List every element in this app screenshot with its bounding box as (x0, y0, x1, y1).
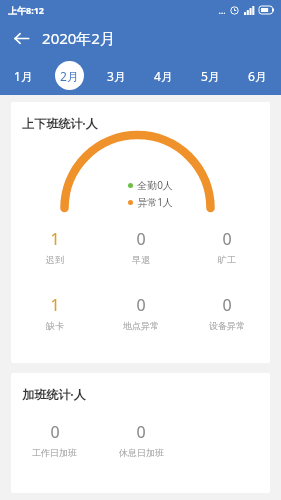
staticText: 加班统计·人 (22, 386, 86, 402)
button[interactable]: 5月 (187, 56, 234, 95)
staticText: 0 (50, 421, 60, 443)
staticText: 2020年2月 (42, 28, 115, 48)
button[interactable]: 3月 (93, 56, 140, 95)
staticText: 0 (136, 421, 146, 443)
staticText: 3月 (107, 68, 126, 84)
staticText: 0 (222, 294, 232, 316)
staticText: 0 (136, 228, 146, 250)
staticText: 设备异常 (209, 320, 245, 331)
button[interactable]: 0 (98, 421, 184, 458)
button[interactable]: 4月 (140, 56, 187, 95)
staticText: 旷工 (218, 254, 236, 265)
staticText: 工作日加班 (32, 447, 77, 458)
staticText: 迟到 (46, 254, 64, 265)
staticText: 异常1人 (137, 195, 173, 209)
button[interactable]: 0 (184, 228, 270, 265)
staticText: 缺卡 (46, 320, 64, 331)
button[interactable]: 1 (11, 228, 98, 265)
button[interactable]: 0 (98, 294, 184, 331)
staticText: … (218, 4, 226, 16)
button[interactable]: 1 (11, 294, 98, 331)
staticText: 1月 (14, 68, 33, 84)
staticText: 地点异常 (123, 320, 159, 331)
staticText: 全勤0人 (137, 178, 173, 192)
button[interactable]: 1月 (0, 56, 46, 95)
button[interactable]: 6月 (234, 56, 281, 95)
staticText: 0 (222, 228, 232, 250)
button[interactable]: 0 (11, 421, 98, 458)
button[interactable]: 2月 (46, 56, 93, 95)
staticText: 早退 (132, 254, 150, 265)
button[interactable]: 0 (184, 294, 270, 331)
button[interactable]: 0 (98, 228, 184, 265)
staticText: 1 (50, 294, 60, 316)
staticText: 休息日加班 (119, 447, 164, 458)
staticText: 上午8:12 (8, 4, 44, 16)
staticText: 上下班统计·人 (22, 115, 98, 131)
staticText: 6月 (248, 68, 267, 84)
button[interactable]: Back (8, 25, 34, 51)
staticText: 1 (50, 228, 60, 250)
staticText: 2月 (60, 68, 79, 84)
staticText: 0 (136, 294, 146, 316)
staticText: 4月 (154, 68, 173, 84)
staticText: 5月 (201, 68, 220, 84)
